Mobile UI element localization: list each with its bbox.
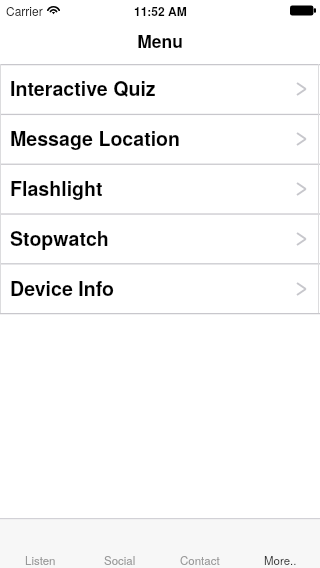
staticText: Interactive Quiz (10, 74, 156, 102)
staticText: Device Info (10, 274, 114, 302)
staticText: Contact (180, 552, 220, 568)
button[interactable]: Stopwatch (0, 214, 320, 264)
button[interactable]: Flashlight (0, 164, 320, 214)
button[interactable]: Message Location (0, 114, 320, 164)
staticText: Listen (25, 552, 56, 568)
staticText: Stopwatch (10, 224, 109, 252)
button[interactable]: Interactive Quiz (0, 64, 320, 114)
button[interactable]: Social (80, 520, 160, 568)
staticText: Message Location (10, 124, 181, 152)
staticText: Menu (137, 28, 183, 53)
button[interactable]: Device Info (0, 264, 320, 314)
staticText: Social (104, 552, 136, 568)
staticText: More.. (264, 552, 297, 568)
staticText: Flashlight (10, 174, 103, 202)
button[interactable]: Listen (0, 520, 80, 568)
staticText: 11:52 AM (134, 2, 187, 19)
button[interactable]: More.. (240, 520, 320, 568)
staticText: Carrier (6, 2, 43, 19)
button[interactable]: Contact (160, 520, 240, 568)
